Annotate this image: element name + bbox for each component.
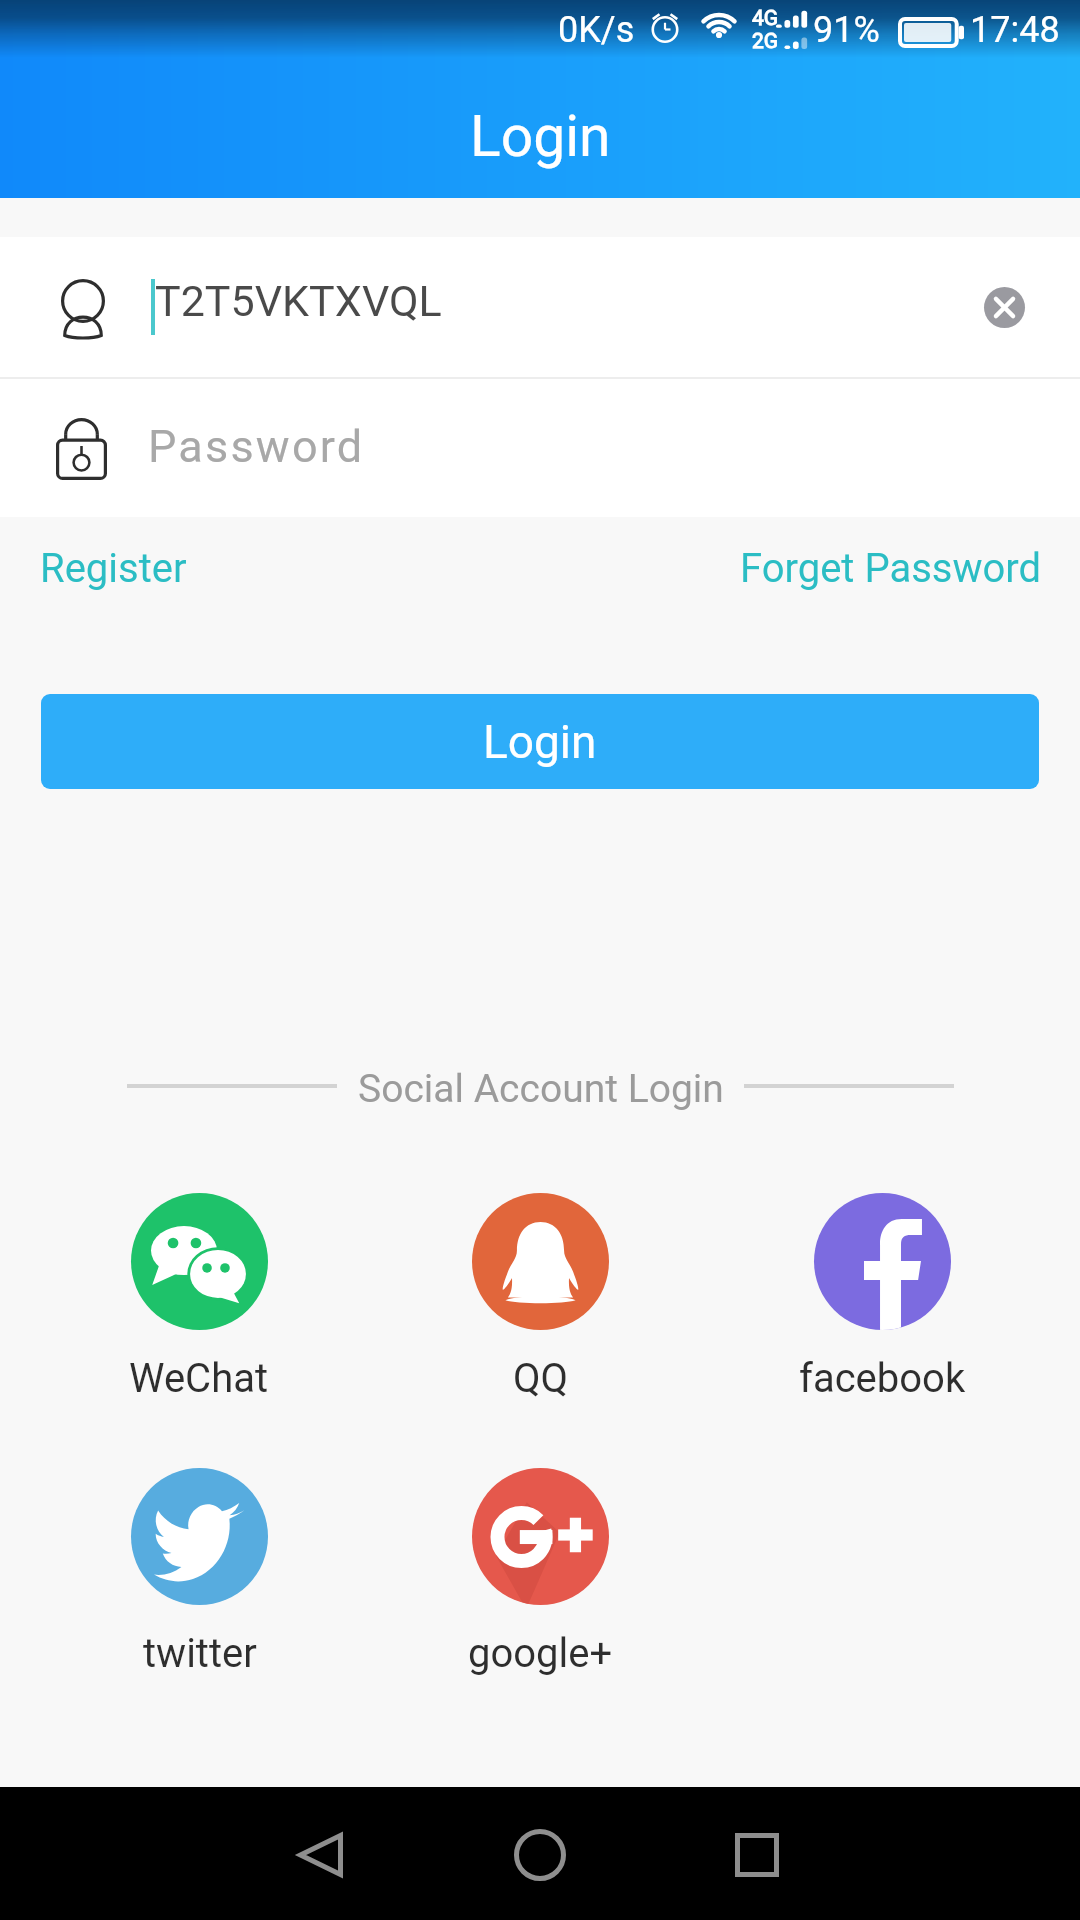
button[interactable]: T2T5VKTXVQL: [0, 237, 1080, 377]
staticText: facebook: [799, 1355, 966, 1402]
staticText: Login: [483, 715, 597, 769]
button[interactable]: Password: [0, 379, 1080, 517]
button[interactable]: google+: [468, 1468, 613, 1677]
staticText: 17:48: [970, 9, 1060, 51]
button[interactable]: Clear text: [956, 237, 1053, 377]
button[interactable]: Home: [442, 1787, 638, 1920]
button[interactable]: Login: [41, 694, 1039, 789]
staticText: twitter: [143, 1630, 257, 1677]
staticText: Forget Password: [740, 545, 1042, 592]
button[interactable]: Forget Password: [740, 528, 1042, 608]
staticText: Password: [148, 420, 365, 473]
staticText: T2T5VKTXVQL: [155, 276, 442, 326]
staticText: 2G: [752, 29, 779, 54]
staticText: 4G: [752, 6, 779, 31]
button[interactable]: Register: [40, 528, 187, 608]
button[interactable]: Back: [222, 1787, 418, 1920]
staticText: QQ: [513, 1355, 569, 1402]
button[interactable]: twitter: [131, 1468, 268, 1677]
staticText: Social Account Login: [358, 1066, 724, 1112]
button[interactable]: Recents: [659, 1787, 855, 1920]
staticText: Login: [470, 103, 611, 170]
staticText: Register: [40, 545, 187, 592]
staticText: WeChat: [129, 1355, 269, 1402]
staticText: 91%: [813, 9, 880, 51]
staticText: 0K/s: [558, 9, 635, 51]
button[interactable]: facebook: [799, 1193, 966, 1402]
button[interactable]: QQ: [472, 1193, 609, 1402]
staticText: google+: [468, 1630, 613, 1677]
button[interactable]: WeChat: [129, 1193, 269, 1402]
